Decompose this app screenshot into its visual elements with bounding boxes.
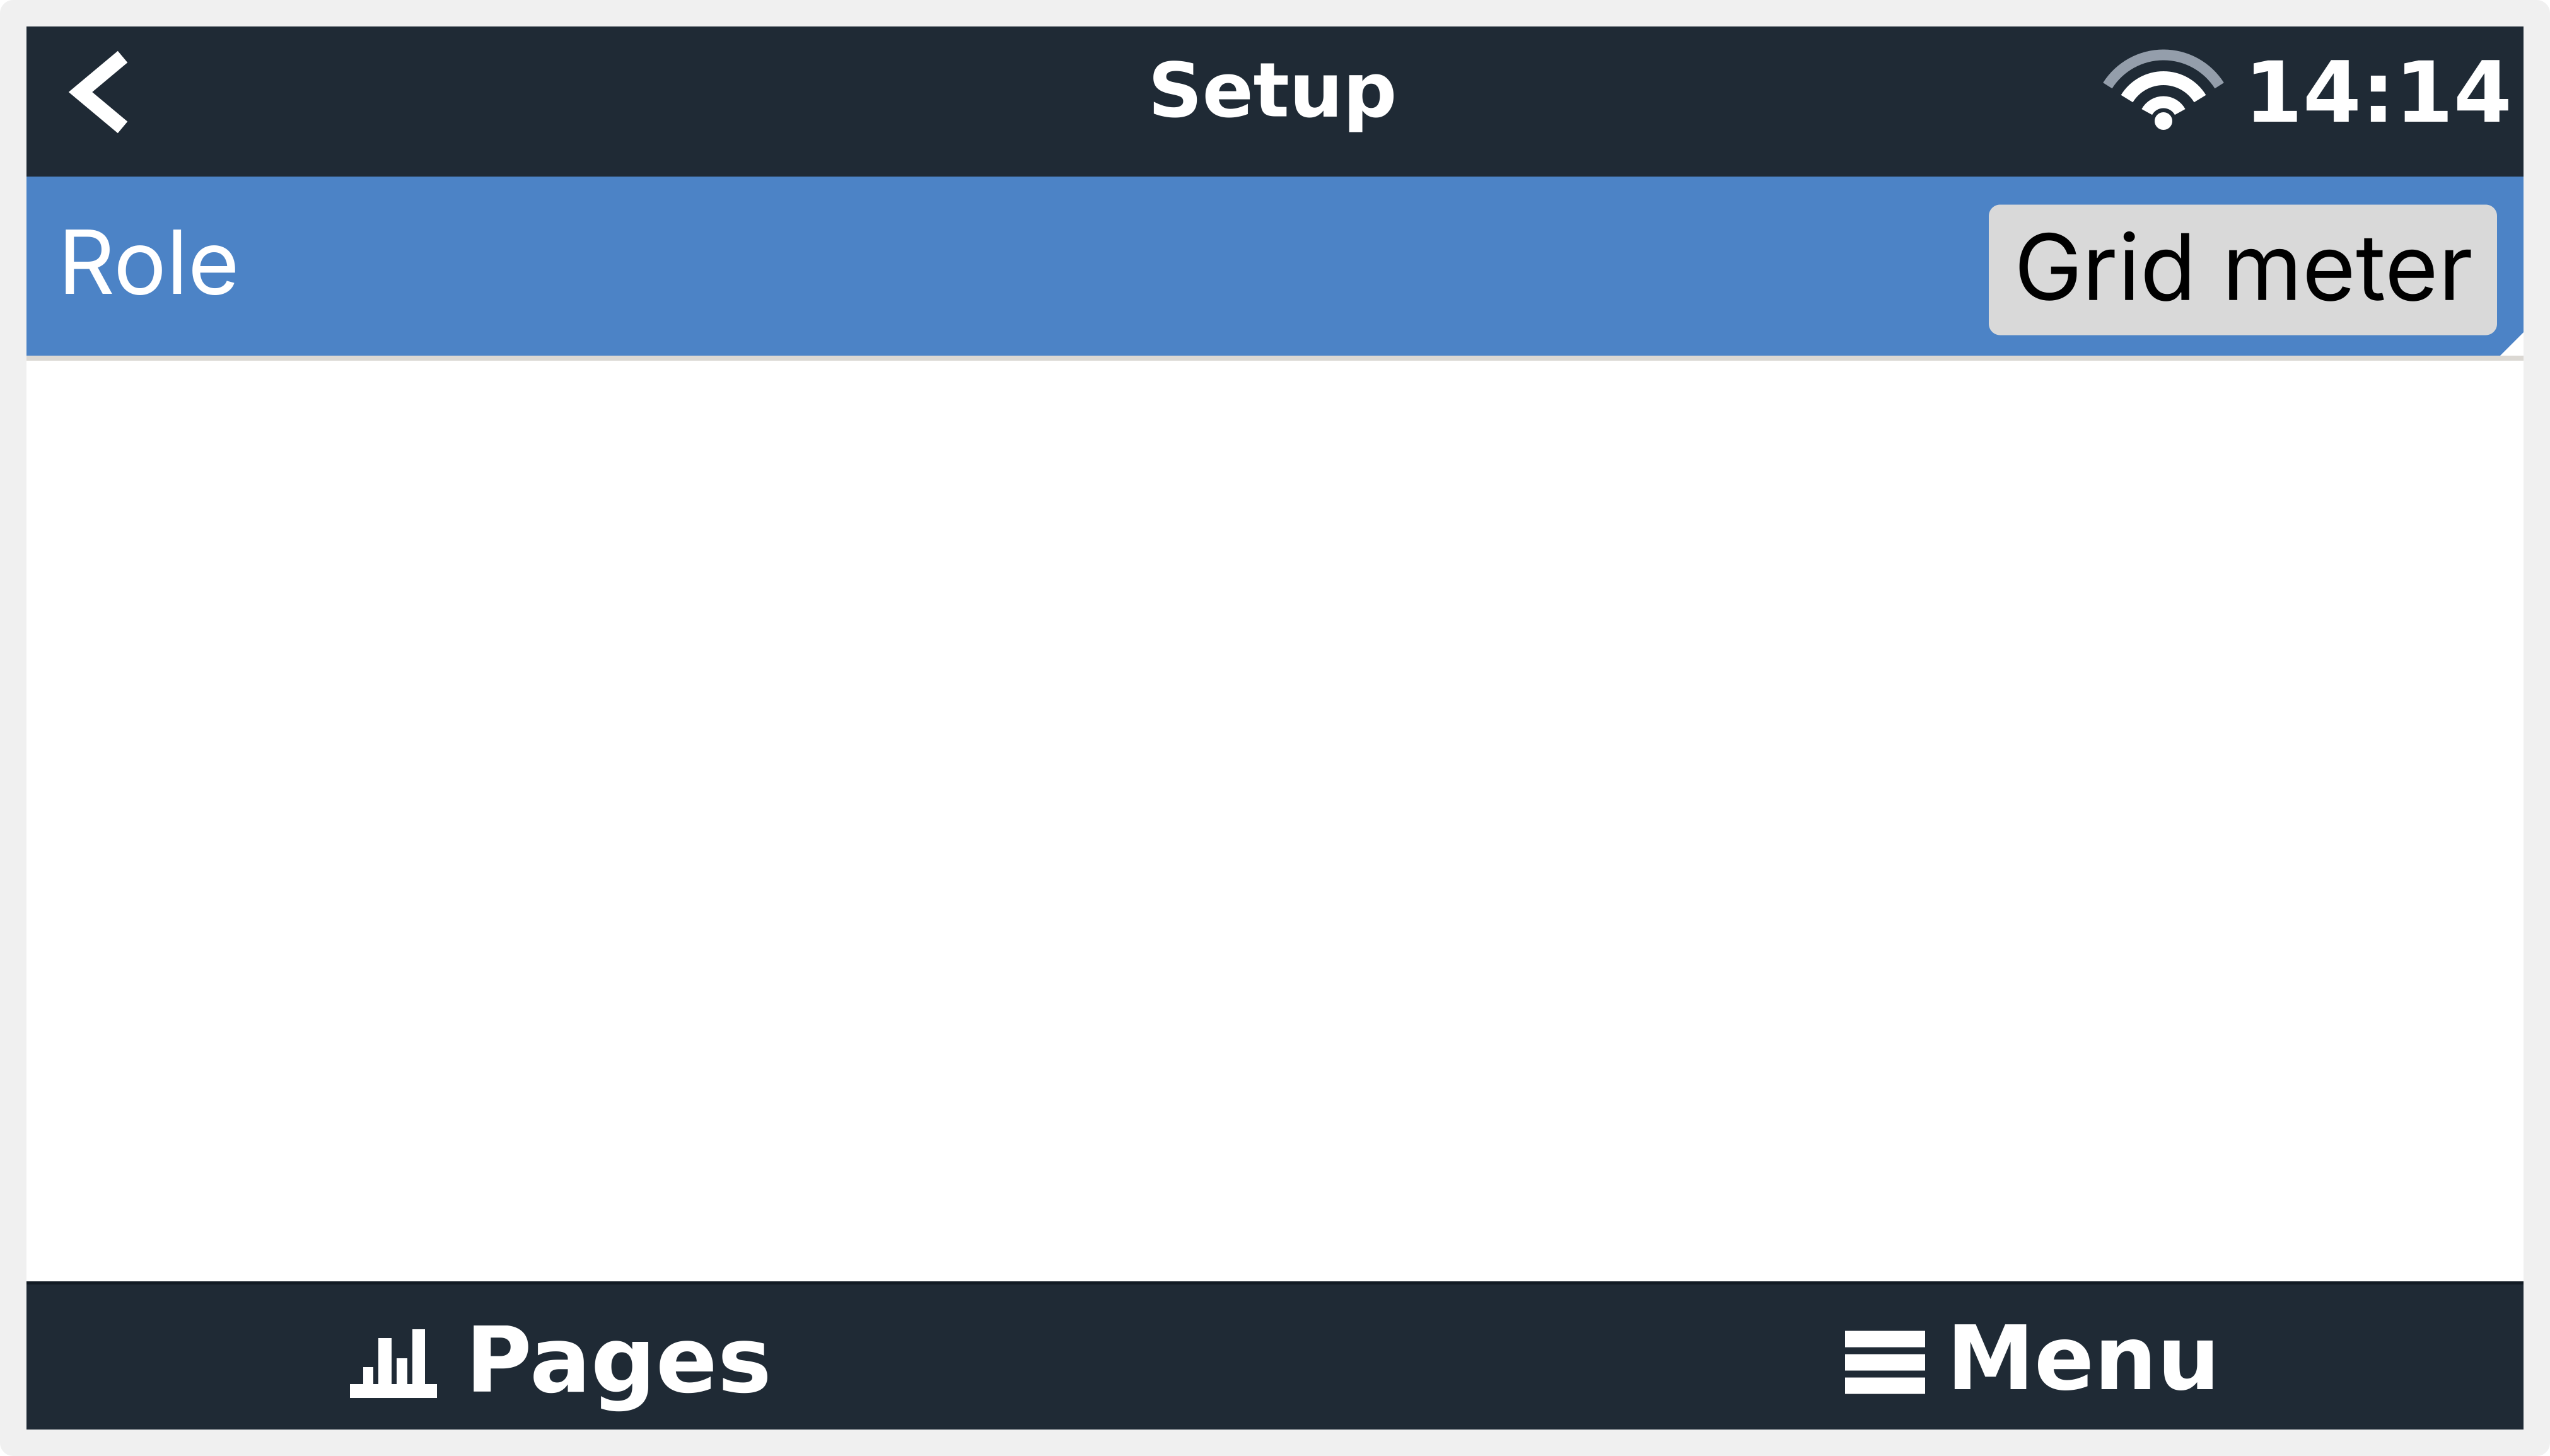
button[interactable]: Pages: [26, 1281, 1275, 1430]
staticText: Pages: [465, 1308, 772, 1413]
staticText: Setup: [1148, 46, 1397, 134]
staticText: Menu: [1947, 1307, 2220, 1410]
button[interactable]: Menu: [1275, 1281, 2524, 1430]
staticText: Grid meter: [2014, 211, 2473, 322]
button[interactable]: Back: [42, 26, 161, 177]
button[interactable]: Role: [26, 177, 2524, 361]
staticText: 14:14: [2244, 44, 2512, 142]
staticText: Role: [58, 208, 240, 315]
